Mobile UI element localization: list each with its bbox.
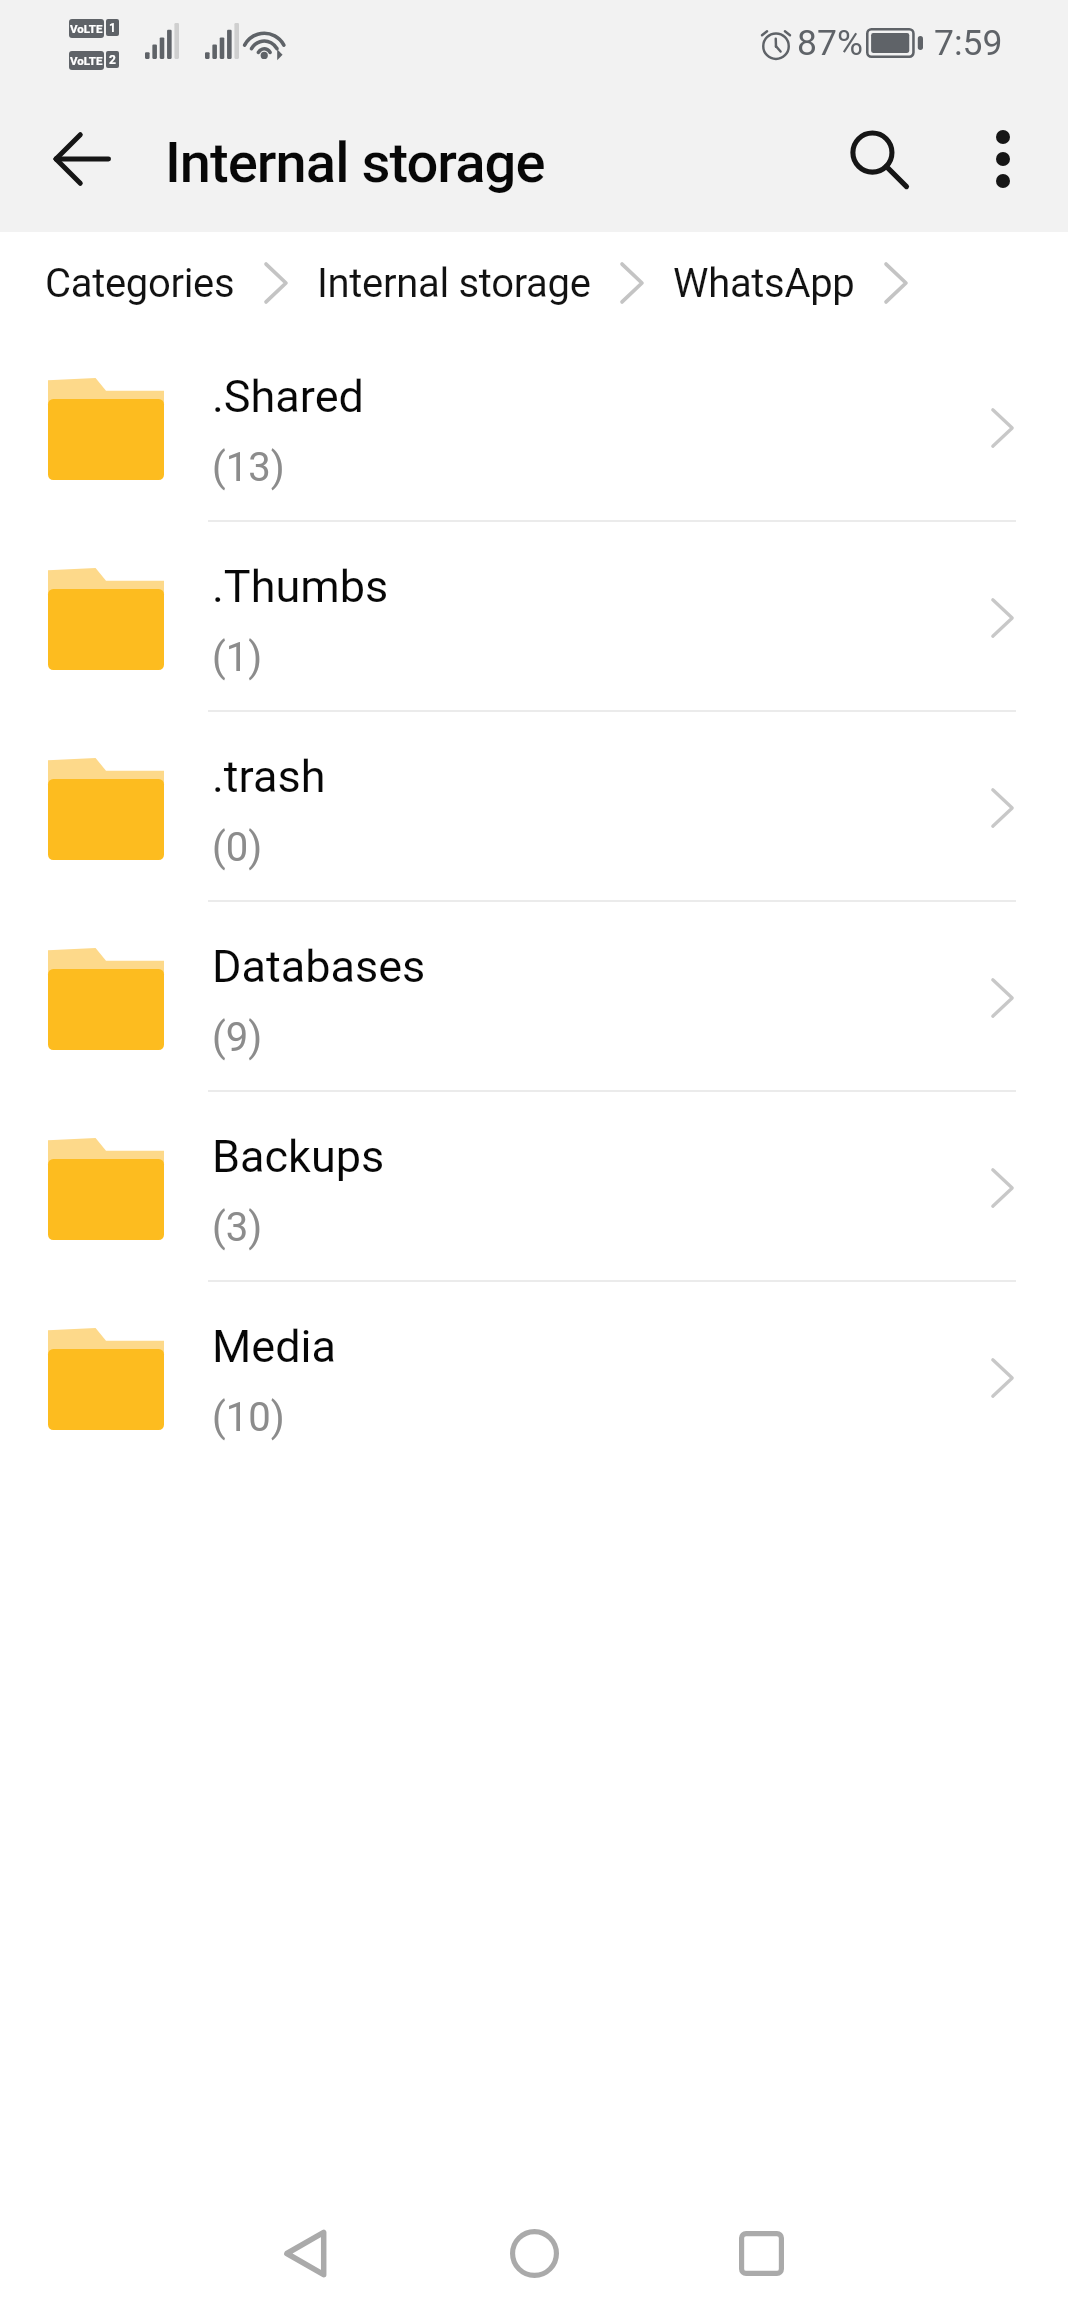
button[interactable]: Backups	[0, 1091, 1068, 1281]
staticText: Internal storage	[165, 130, 545, 196]
button[interactable]: .Shared	[0, 331, 1068, 521]
staticText: .trash	[212, 750, 326, 803]
staticText: 7:59	[934, 22, 1003, 64]
button[interactable]: Recents	[676, 2188, 846, 2314]
staticText: 2	[109, 53, 116, 67]
button[interactable]: .Thumbs	[0, 521, 1068, 711]
staticText: (0)	[212, 824, 263, 871]
button[interactable]: Back	[25, 103, 137, 215]
staticText: WhatsApp	[673, 260, 855, 307]
button[interactable]: Categories	[45, 248, 288, 318]
staticText: Internal storage	[317, 260, 591, 307]
staticText: .Thumbs	[212, 560, 389, 613]
staticText: 87%	[797, 22, 863, 64]
button[interactable]: Back	[220, 2188, 390, 2314]
staticText: 1	[109, 21, 116, 35]
staticText: (13)	[212, 444, 285, 491]
button[interactable]: .trash	[0, 711, 1068, 901]
button[interactable]: WhatsApp	[673, 248, 908, 318]
staticText: VoLTE	[70, 54, 103, 67]
staticText: Backups	[212, 1130, 385, 1183]
button[interactable]: More options	[951, 107, 1055, 211]
staticText: Media	[212, 1320, 336, 1373]
button[interactable]: Home	[449, 2188, 619, 2314]
staticText: .Shared	[212, 370, 364, 423]
button[interactable]: Databases	[0, 901, 1068, 1091]
staticText: (3)	[212, 1204, 263, 1251]
staticText: (1)	[212, 634, 263, 681]
staticText: VoLTE	[70, 22, 103, 35]
button[interactable]: Internal storage	[317, 248, 644, 318]
staticText: Databases	[212, 940, 426, 993]
staticText: (9)	[212, 1014, 263, 1061]
button[interactable]: Media	[0, 1281, 1068, 1471]
staticText: (10)	[212, 1394, 285, 1441]
staticText: Categories	[45, 260, 235, 307]
button[interactable]: Search	[822, 104, 934, 216]
